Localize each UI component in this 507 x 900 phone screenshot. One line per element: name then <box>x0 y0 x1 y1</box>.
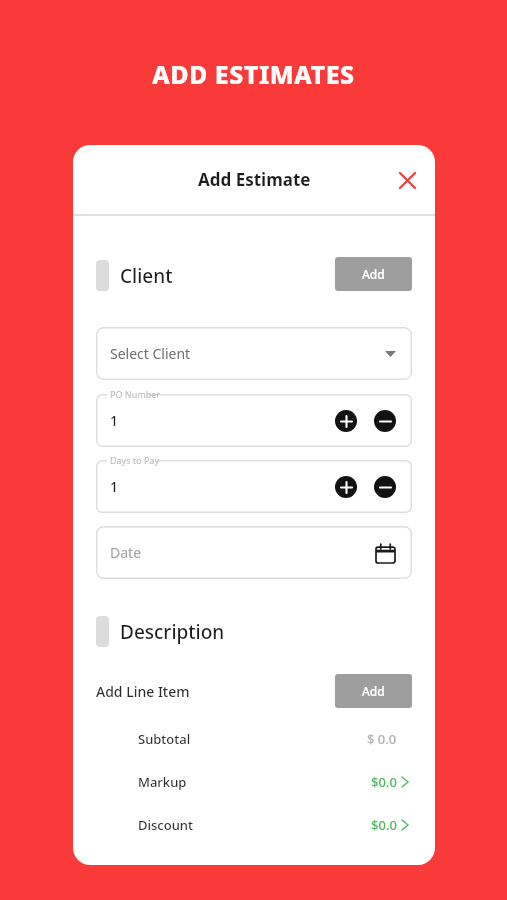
staticText: Markup <box>138 773 187 791</box>
staticText: $0.0 <box>371 816 397 834</box>
button[interactable]: Close <box>389 162 425 198</box>
button[interactable]: Add <box>335 674 412 708</box>
button[interactable]: Subtotal <box>138 729 408 749</box>
button[interactable]: Markup <box>138 772 408 792</box>
staticText: Description <box>120 619 225 645</box>
button[interactable]: Pick date <box>370 538 400 568</box>
staticText: $0.0 <box>371 773 397 791</box>
staticText: Add <box>362 683 385 699</box>
button[interactable]: Discount <box>138 815 408 835</box>
staticText: PO Number <box>110 388 160 400</box>
staticText: Select Client <box>110 344 191 363</box>
button[interactable]: Add <box>335 257 412 291</box>
staticText: Date <box>110 543 142 562</box>
button[interactable]: Increase <box>335 410 357 432</box>
staticText: 1 <box>110 411 119 430</box>
staticText: Discount <box>138 816 193 834</box>
staticText: Add Line Item <box>96 682 190 701</box>
staticText: $ 0.0 <box>367 730 397 748</box>
staticText: Subtotal <box>138 730 191 748</box>
button[interactable]: Decrease <box>374 410 396 432</box>
button[interactable]: Decrease <box>374 476 396 498</box>
staticText: Client <box>120 263 173 289</box>
staticText: Add <box>362 266 385 282</box>
staticText: Add Estimate <box>198 168 311 191</box>
staticText: ADD ESTIMATES <box>152 57 355 91</box>
button[interactable]: Increase <box>335 476 357 498</box>
staticText: Days to Pay <box>110 454 159 466</box>
staticText: 1 <box>110 477 119 496</box>
